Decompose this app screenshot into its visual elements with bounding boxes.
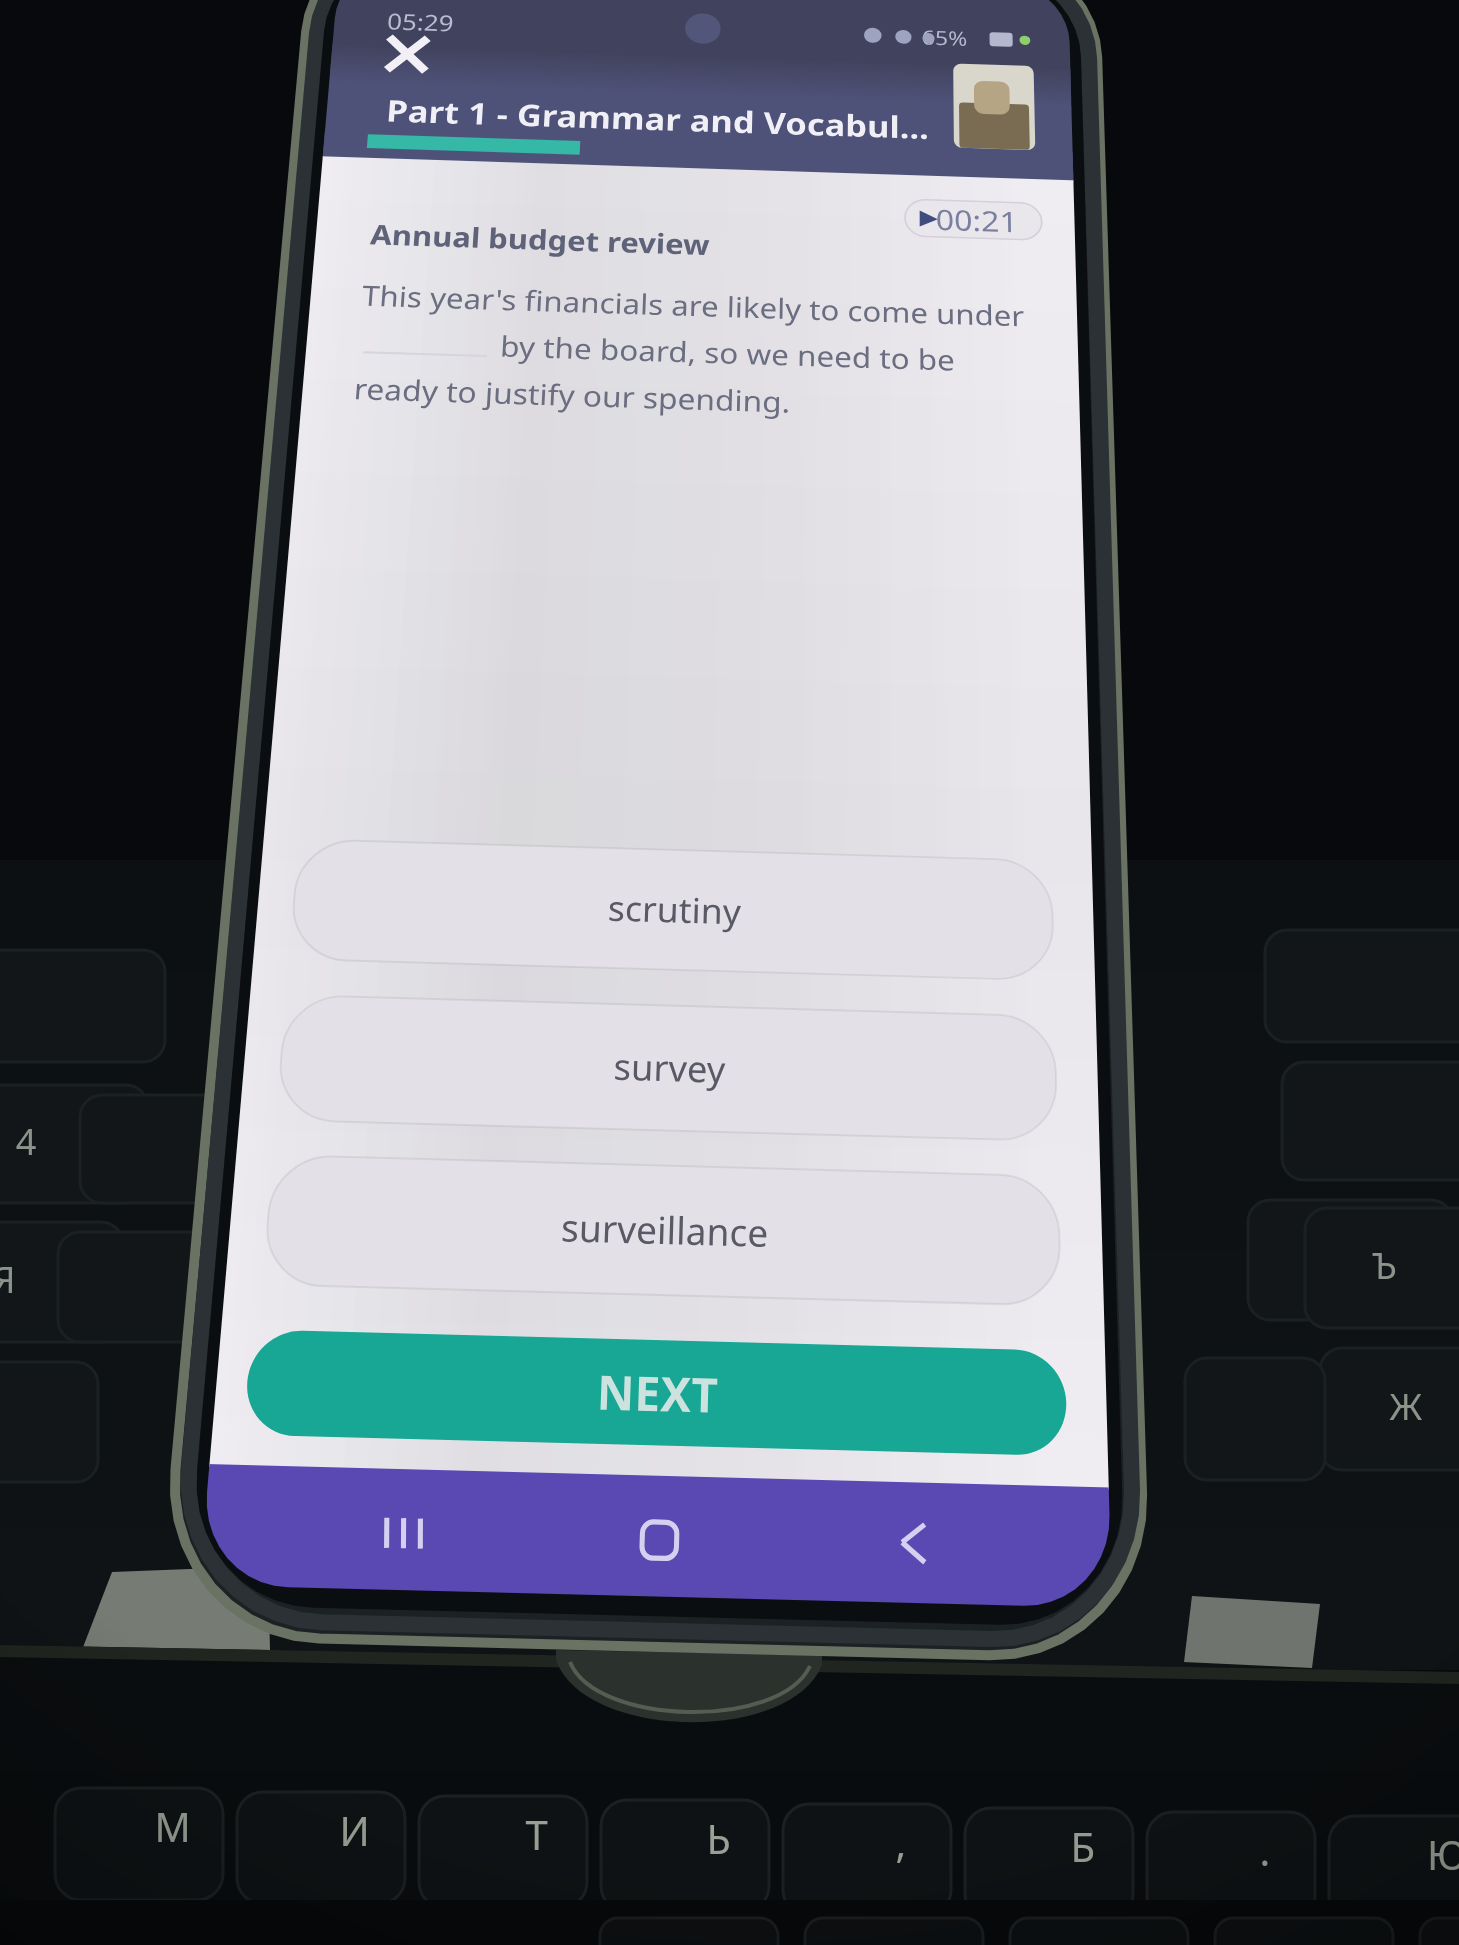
button[interactable]: NEXT xyxy=(243,1329,1068,1456)
button[interactable]: Profile xyxy=(948,65,1042,151)
button[interactable]: Recent apps xyxy=(349,1496,459,1572)
button[interactable]: Close xyxy=(371,23,454,87)
button[interactable]: surveillance xyxy=(263,1155,1061,1306)
button[interactable]: survey xyxy=(276,995,1057,1141)
button[interactable]: Back xyxy=(861,1506,965,1582)
button[interactable]: scrutiny xyxy=(289,839,1054,980)
button[interactable]: Home xyxy=(606,1502,712,1578)
